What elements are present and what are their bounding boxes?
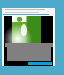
button[interactable] [12, 16, 41, 43]
